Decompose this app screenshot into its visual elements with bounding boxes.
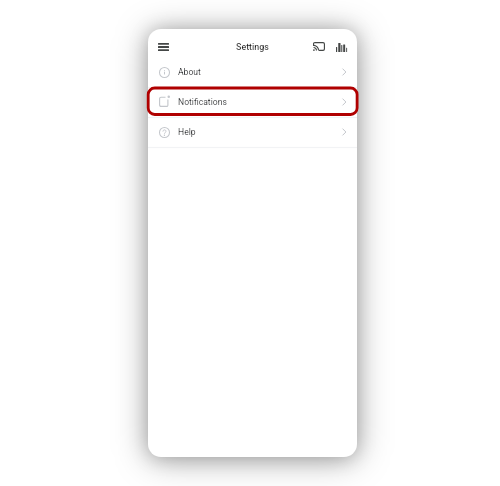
staticText: Help: [178, 127, 196, 137]
button[interactable]: About: [148, 57, 357, 87]
staticText: Settings: [236, 42, 269, 52]
button[interactable]: Audio levels: [330, 36, 352, 58]
staticText: About: [178, 67, 201, 77]
button[interactable]: Notifications: [148, 87, 357, 117]
staticText: Notifications: [178, 97, 227, 107]
button[interactable]: Help: [148, 117, 357, 147]
button[interactable]: Cast: [308, 35, 330, 57]
button[interactable]: Open navigation menu: [152, 36, 174, 58]
